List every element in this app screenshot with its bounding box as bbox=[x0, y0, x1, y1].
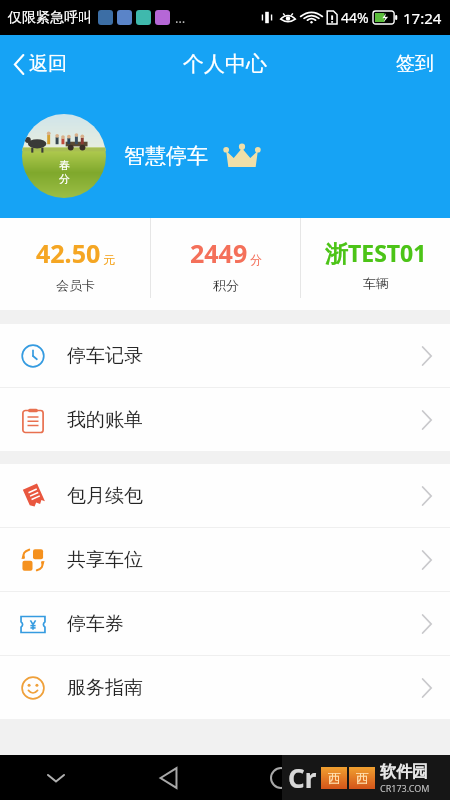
staticText: 共享车位 bbox=[67, 548, 143, 572]
button[interactable]: 春 bbox=[0, 93, 450, 218]
staticText: 17:24 bbox=[403, 8, 442, 28]
staticText: 返回 bbox=[29, 52, 67, 76]
staticText: 签到 bbox=[396, 52, 434, 76]
button[interactable]: 签到 bbox=[380, 44, 450, 84]
button[interactable]: 我的账单 bbox=[0, 388, 450, 451]
staticText: 浙TEST01 bbox=[325, 237, 427, 268]
button[interactable]: Back bbox=[112, 755, 224, 800]
button[interactable]: 返回 bbox=[0, 44, 81, 84]
staticText: 分 bbox=[59, 172, 70, 186]
staticText: 服务指南 bbox=[67, 676, 143, 700]
staticText: 软件园 bbox=[380, 762, 428, 782]
staticText: … bbox=[175, 9, 186, 27]
staticText: 42.50 bbox=[36, 236, 101, 270]
staticText: 会员卡 bbox=[56, 277, 95, 293]
staticText: 车辆 bbox=[363, 275, 389, 291]
staticText: 个人中心 bbox=[183, 51, 267, 77]
staticText: 仅限紧急呼叫 bbox=[8, 9, 92, 27]
staticText: 分 bbox=[250, 252, 262, 267]
staticText: 停车记录 bbox=[67, 344, 143, 368]
staticText: 元 bbox=[103, 252, 115, 267]
staticText: 44% bbox=[341, 8, 369, 27]
staticText: Cr bbox=[288, 760, 317, 795]
staticText: 2449 bbox=[190, 236, 248, 270]
staticText: 包月续包 bbox=[67, 484, 143, 508]
staticText: CR173.COM bbox=[380, 782, 430, 794]
staticText: 停车券 bbox=[67, 612, 124, 636]
button[interactable]: 服务指南 bbox=[0, 656, 450, 719]
button[interactable]: Hide keyboard bbox=[0, 755, 112, 800]
staticText: 智慧停车 bbox=[124, 143, 208, 169]
button[interactable]: Home bbox=[224, 755, 337, 800]
button[interactable]: 浙TEST01 bbox=[301, 218, 450, 310]
button[interactable]: 2449 bbox=[151, 218, 300, 310]
button[interactable]: 42.50 bbox=[0, 218, 150, 310]
staticText: 春 bbox=[59, 158, 70, 172]
button[interactable]: 停车券 bbox=[0, 592, 450, 655]
button[interactable]: 停车记录 bbox=[0, 324, 450, 387]
button[interactable]: 包月续包 bbox=[0, 464, 450, 527]
staticText: 我的账单 bbox=[67, 408, 143, 432]
staticText: 积分 bbox=[213, 277, 239, 293]
staticText: 西 bbox=[328, 770, 341, 786]
staticText: 西 bbox=[356, 770, 369, 786]
button[interactable]: 共享车位 bbox=[0, 528, 450, 591]
